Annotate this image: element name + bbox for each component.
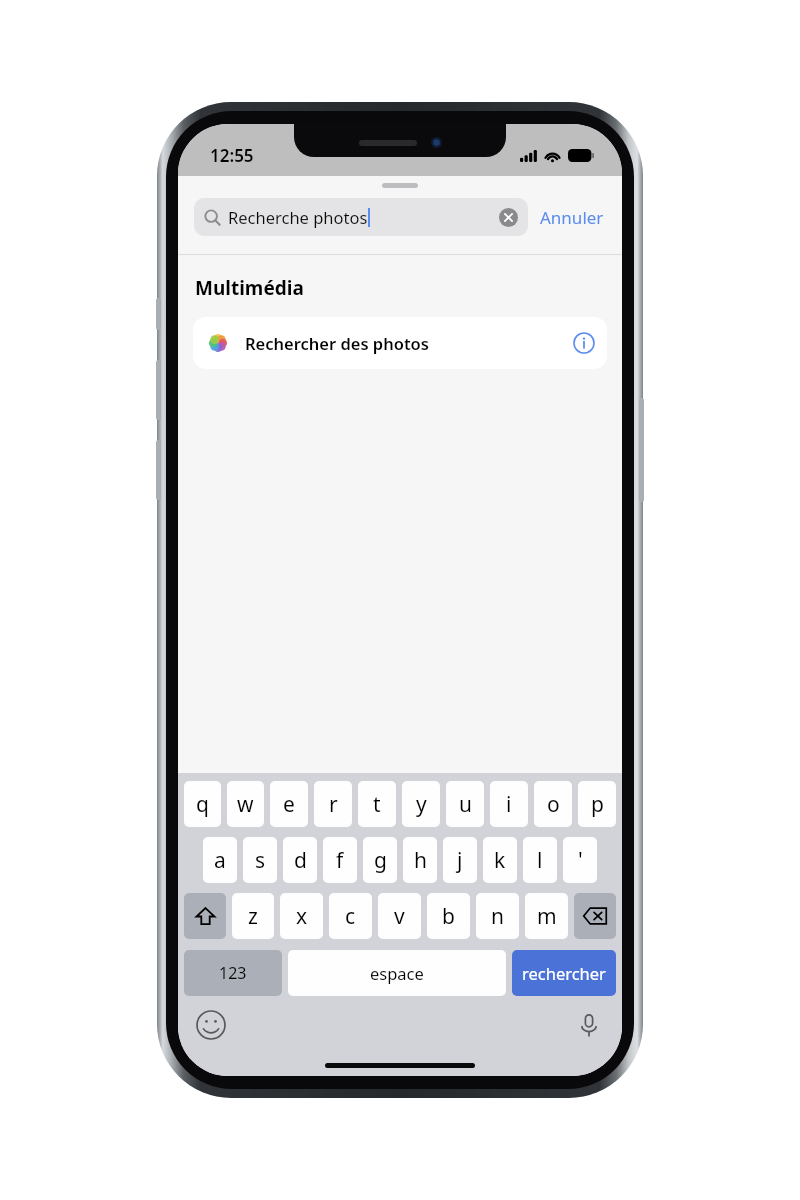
button[interactable]: v (378, 893, 421, 939)
button[interactable]: g (363, 837, 397, 883)
staticText: p (591, 790, 604, 819)
staticText: rechercher (522, 962, 606, 984)
button[interactable]: b (427, 893, 470, 939)
button[interactable]: n (476, 893, 519, 939)
staticText: 123 (219, 962, 247, 984)
staticText: espace (370, 962, 424, 984)
button[interactable]: q (184, 781, 221, 827)
button[interactable]: x (280, 893, 323, 939)
button[interactable]: m (525, 893, 568, 939)
button[interactable]: j (443, 837, 477, 883)
button[interactable]: Annuler (528, 200, 606, 235)
staticText: s (255, 846, 266, 875)
staticText: d (294, 846, 307, 875)
staticText: x (296, 902, 308, 931)
button[interactable]: Recherche photos (194, 198, 528, 236)
button[interactable]: t (358, 781, 396, 827)
staticText: f (336, 846, 344, 875)
button[interactable]: w (227, 781, 264, 827)
button[interactable]: l (523, 837, 557, 883)
staticText: i (506, 790, 512, 819)
staticText: r (329, 790, 338, 819)
staticText: c (345, 902, 356, 931)
button[interactable]: e (270, 781, 308, 827)
staticText: Rechercher des photos (245, 332, 429, 354)
staticText: Multimédia (195, 275, 304, 301)
button[interactable]: k (483, 837, 517, 883)
button[interactable]: c (329, 893, 372, 939)
button[interactable]: Emoji (196, 1010, 226, 1040)
staticText: v (394, 902, 405, 931)
button[interactable]: i (490, 781, 528, 827)
staticText: y (416, 790, 427, 819)
button[interactable]: o (534, 781, 572, 827)
staticText: Annuler (540, 206, 604, 229)
button[interactable]: Dictée (574, 1010, 604, 1040)
staticText: q (196, 790, 209, 819)
staticText: l (537, 846, 543, 875)
button[interactable]: Supprimer (574, 893, 616, 939)
staticText: 12:55 (210, 144, 254, 167)
staticText: g (374, 846, 387, 875)
button[interactable]: rechercher (512, 950, 616, 996)
staticText: ' (578, 846, 583, 875)
button[interactable]: u (446, 781, 484, 827)
button[interactable]: h (403, 837, 437, 883)
staticText: z (248, 902, 258, 931)
staticText: w (237, 790, 254, 819)
staticText: j (457, 846, 463, 875)
staticText: n (491, 902, 504, 931)
button[interactable]: Effacer (499, 208, 518, 227)
button[interactable]: y (402, 781, 440, 827)
button[interactable]: Informations (573, 332, 595, 354)
button[interactable]: z (232, 893, 274, 939)
button[interactable]: p (578, 781, 616, 827)
button[interactable]: s (243, 837, 277, 883)
button[interactable]: r (314, 781, 352, 827)
button[interactable]: f (323, 837, 357, 883)
button[interactable]: ' (563, 837, 597, 883)
staticText: m (537, 902, 557, 931)
staticText: u (459, 790, 472, 819)
button[interactable]: d (283, 837, 317, 883)
button[interactable]: Rechercher des photos (193, 317, 607, 369)
button[interactable]: espace (288, 950, 506, 996)
button[interactable]: a (203, 837, 237, 883)
button[interactable]: Majuscule (184, 893, 226, 939)
staticText: k (494, 846, 506, 875)
staticText: h (414, 846, 427, 875)
button[interactable]: 123 (184, 950, 282, 996)
staticText: o (547, 790, 560, 819)
staticText: b (442, 902, 455, 931)
staticText: t (373, 790, 381, 819)
staticText: e (283, 790, 295, 819)
staticText: Recherche photos (228, 206, 368, 228)
staticText: a (214, 846, 226, 875)
